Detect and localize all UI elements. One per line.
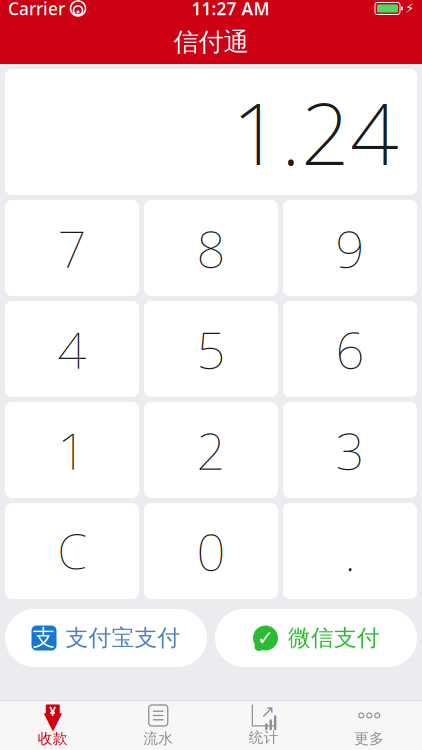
staticText: ✓ (257, 627, 274, 649)
staticText: ▼ (44, 707, 62, 734)
button[interactable]: 5 (144, 301, 278, 397)
staticText: C (57, 519, 86, 583)
staticText: 支 (32, 624, 55, 652)
staticText: 更多 (354, 729, 384, 747)
button[interactable]: 2 (144, 402, 278, 498)
staticText: 6 (335, 315, 364, 383)
staticText: 统计 (249, 728, 279, 746)
staticText: 收款 (38, 729, 68, 747)
staticText: 信付通 (173, 26, 248, 57)
button[interactable]: 9 (283, 200, 417, 296)
staticText: . (344, 517, 355, 585)
staticText: 2 (196, 416, 225, 484)
button[interactable]: 3 (283, 402, 417, 498)
button[interactable]: 0 (144, 503, 278, 599)
staticText: 1.24 (232, 75, 399, 189)
button[interactable]: ↗ (211, 701, 316, 750)
staticText: 1 (57, 416, 86, 484)
staticText: 5 (196, 315, 225, 383)
button[interactable]: ✓ (215, 609, 417, 667)
staticText: 9 (335, 214, 364, 282)
button[interactable]: 1 (5, 402, 139, 498)
button[interactable]: 支 (5, 609, 207, 667)
staticText: 3 (335, 416, 364, 484)
staticText: 7 (57, 214, 86, 282)
staticText: ↗ (260, 702, 275, 721)
staticText: 8 (196, 214, 225, 282)
button[interactable]: 8 (144, 200, 278, 296)
button[interactable]: 4 (5, 301, 139, 397)
button[interactable]: 流水 (105, 701, 211, 750)
staticText: 微信支付 (288, 624, 380, 652)
button[interactable]: . (283, 503, 417, 599)
staticText: 11:27 AM (191, 0, 269, 20)
button[interactable]: 7 (5, 200, 139, 296)
button[interactable]: ▼ (0, 701, 105, 750)
staticText: 0 (196, 517, 225, 585)
staticText: ¥ (49, 703, 56, 719)
button[interactable]: 更多 (316, 701, 422, 750)
button[interactable]: 6 (283, 301, 417, 397)
staticText: ⚡︎ (405, 1, 414, 16)
staticText: 4 (57, 315, 86, 383)
staticText: 支付宝支付 (65, 624, 180, 652)
staticText: 流水 (143, 729, 173, 747)
staticText: Carrier (8, 0, 65, 20)
button[interactable]: C (5, 503, 139, 599)
